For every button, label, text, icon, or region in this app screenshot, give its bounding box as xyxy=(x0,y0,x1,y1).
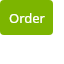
staticText: Order xyxy=(9,9,45,27)
button[interactable]: Order xyxy=(0,0,53,35)
